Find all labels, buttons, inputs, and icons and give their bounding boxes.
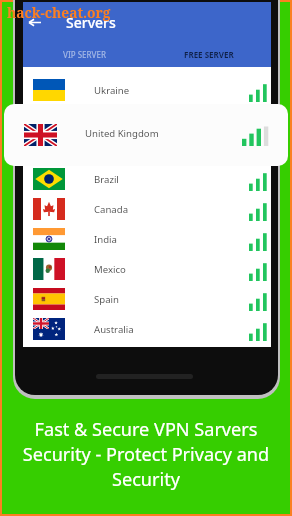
staticText: India — [94, 233, 117, 246]
staticText: Servers — [66, 13, 116, 32]
staticText: VIP SERVER — [63, 49, 107, 60]
staticText: Australia — [94, 323, 134, 336]
button[interactable]: India — [23, 224, 271, 254]
button[interactable]: Brazil — [23, 164, 271, 194]
button[interactable]: VIP SERVER — [23, 42, 147, 67]
button[interactable]: Canada — [23, 194, 271, 224]
button[interactable]: Australia — [23, 314, 271, 344]
staticText: hack-cheat.org — [7, 3, 111, 22]
button[interactable]: Ukraine — [23, 75, 271, 105]
button[interactable]: Back — [24, 11, 46, 33]
staticText: United Kingdom — [85, 127, 159, 140]
staticText: Brazil — [94, 173, 119, 186]
button[interactable]: FREE SERVER — [147, 42, 271, 67]
staticText: Fast & Secure VPN Sarvers Security - Pro… — [10, 417, 282, 492]
staticText: Spain — [94, 293, 119, 306]
button[interactable]: Mexico — [23, 254, 271, 284]
staticText: Mexico — [94, 263, 126, 276]
staticText: Canada — [94, 203, 129, 216]
staticText: Ukraine — [94, 84, 130, 97]
button[interactable]: United Kingdom — [4, 104, 288, 166]
staticText: FREE SERVER — [184, 49, 234, 60]
button[interactable]: Spain — [23, 284, 271, 314]
